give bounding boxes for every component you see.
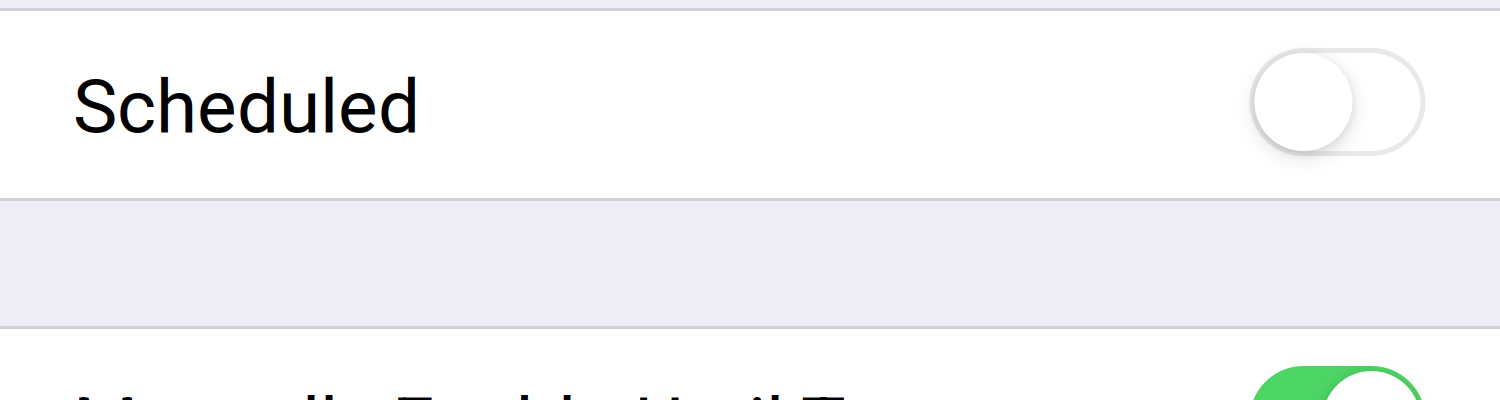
button[interactable]: Manually Enable Until Tomorrow <box>0 328 1500 400</box>
button[interactable]: Scheduled <box>0 10 1500 200</box>
staticText: Scheduled <box>73 63 420 151</box>
staticText: Manually Enable Until Tomorrow <box>73 381 1142 400</box>
